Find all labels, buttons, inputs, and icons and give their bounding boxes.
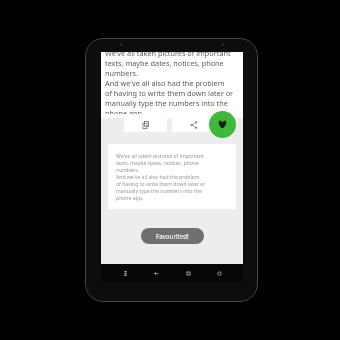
button[interactable]: Share [172,118,215,132]
button[interactable]: Copy [124,118,167,132]
staticText: We've all taken pictures of important te… [105,48,234,114]
staticText: Favourited! [156,232,189,240]
button[interactable]: Favourite [209,111,236,138]
button[interactable]: Recents [211,265,227,281]
button[interactable]: Favourited! [141,228,204,244]
button[interactable]: We've all taken pictures of important te… [108,144,236,209]
button[interactable]: Home [180,265,196,281]
button[interactable]: Back [148,265,164,281]
button[interactable]: Menu [117,265,133,281]
staticText: We've all taken pictures of important te… [116,153,206,202]
